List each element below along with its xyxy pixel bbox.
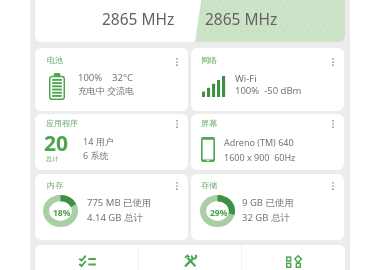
button[interactable]	[35, 174, 188, 240]
button[interactable]	[35, 0, 345, 42]
button[interactable]: More options	[169, 54, 185, 70]
staticText: 775 MB 已使用	[87, 196, 152, 209]
staticText: 1600 x 900 60Hz	[224, 151, 296, 163]
staticText: 存储	[201, 180, 217, 190]
staticText: 2865 MHz	[205, 8, 278, 29]
staticText: 100% -50 dBm	[235, 84, 302, 97]
staticText: Wi-Fi	[235, 72, 257, 85]
staticText: 6 系统	[83, 149, 109, 161]
staticText: 14 用户	[83, 135, 114, 147]
button[interactable]	[191, 174, 344, 240]
staticText: 18%	[53, 207, 71, 219]
button[interactable]	[191, 48, 344, 111]
staticText: 总计	[46, 155, 59, 163]
staticText: 9 GB 已使用	[242, 196, 294, 209]
staticText: 100% 32°C	[78, 71, 134, 84]
button[interactable]	[191, 114, 344, 170]
button[interactable]: More options	[325, 178, 341, 194]
button[interactable]: More options	[325, 54, 341, 70]
button[interactable]: Reports	[35, 245, 139, 270]
button[interactable]: More options	[169, 116, 185, 132]
staticText: 网络	[201, 55, 217, 65]
button[interactable]: Apps	[242, 245, 345, 270]
staticText: 32 GB 总计	[242, 211, 290, 224]
staticText: 29%	[210, 207, 228, 219]
staticText: 电池	[47, 55, 63, 65]
staticText: 屏幕	[201, 118, 217, 128]
staticText: 应用程序	[46, 118, 78, 128]
button[interactable]	[35, 48, 188, 111]
button[interactable]: Tools	[139, 245, 242, 270]
button[interactable]: More options	[325, 116, 341, 132]
staticText: 内存	[47, 180, 63, 190]
button[interactable]	[35, 114, 188, 170]
staticText: 4.14 GB 总计	[87, 211, 143, 224]
button[interactable]: More options	[169, 178, 185, 194]
staticText: Adreno (TM) 640	[224, 136, 294, 148]
staticText: 20	[44, 129, 69, 158]
staticText: 充电中 交流电	[78, 84, 135, 96]
staticText: 2865 MHz	[102, 8, 175, 29]
